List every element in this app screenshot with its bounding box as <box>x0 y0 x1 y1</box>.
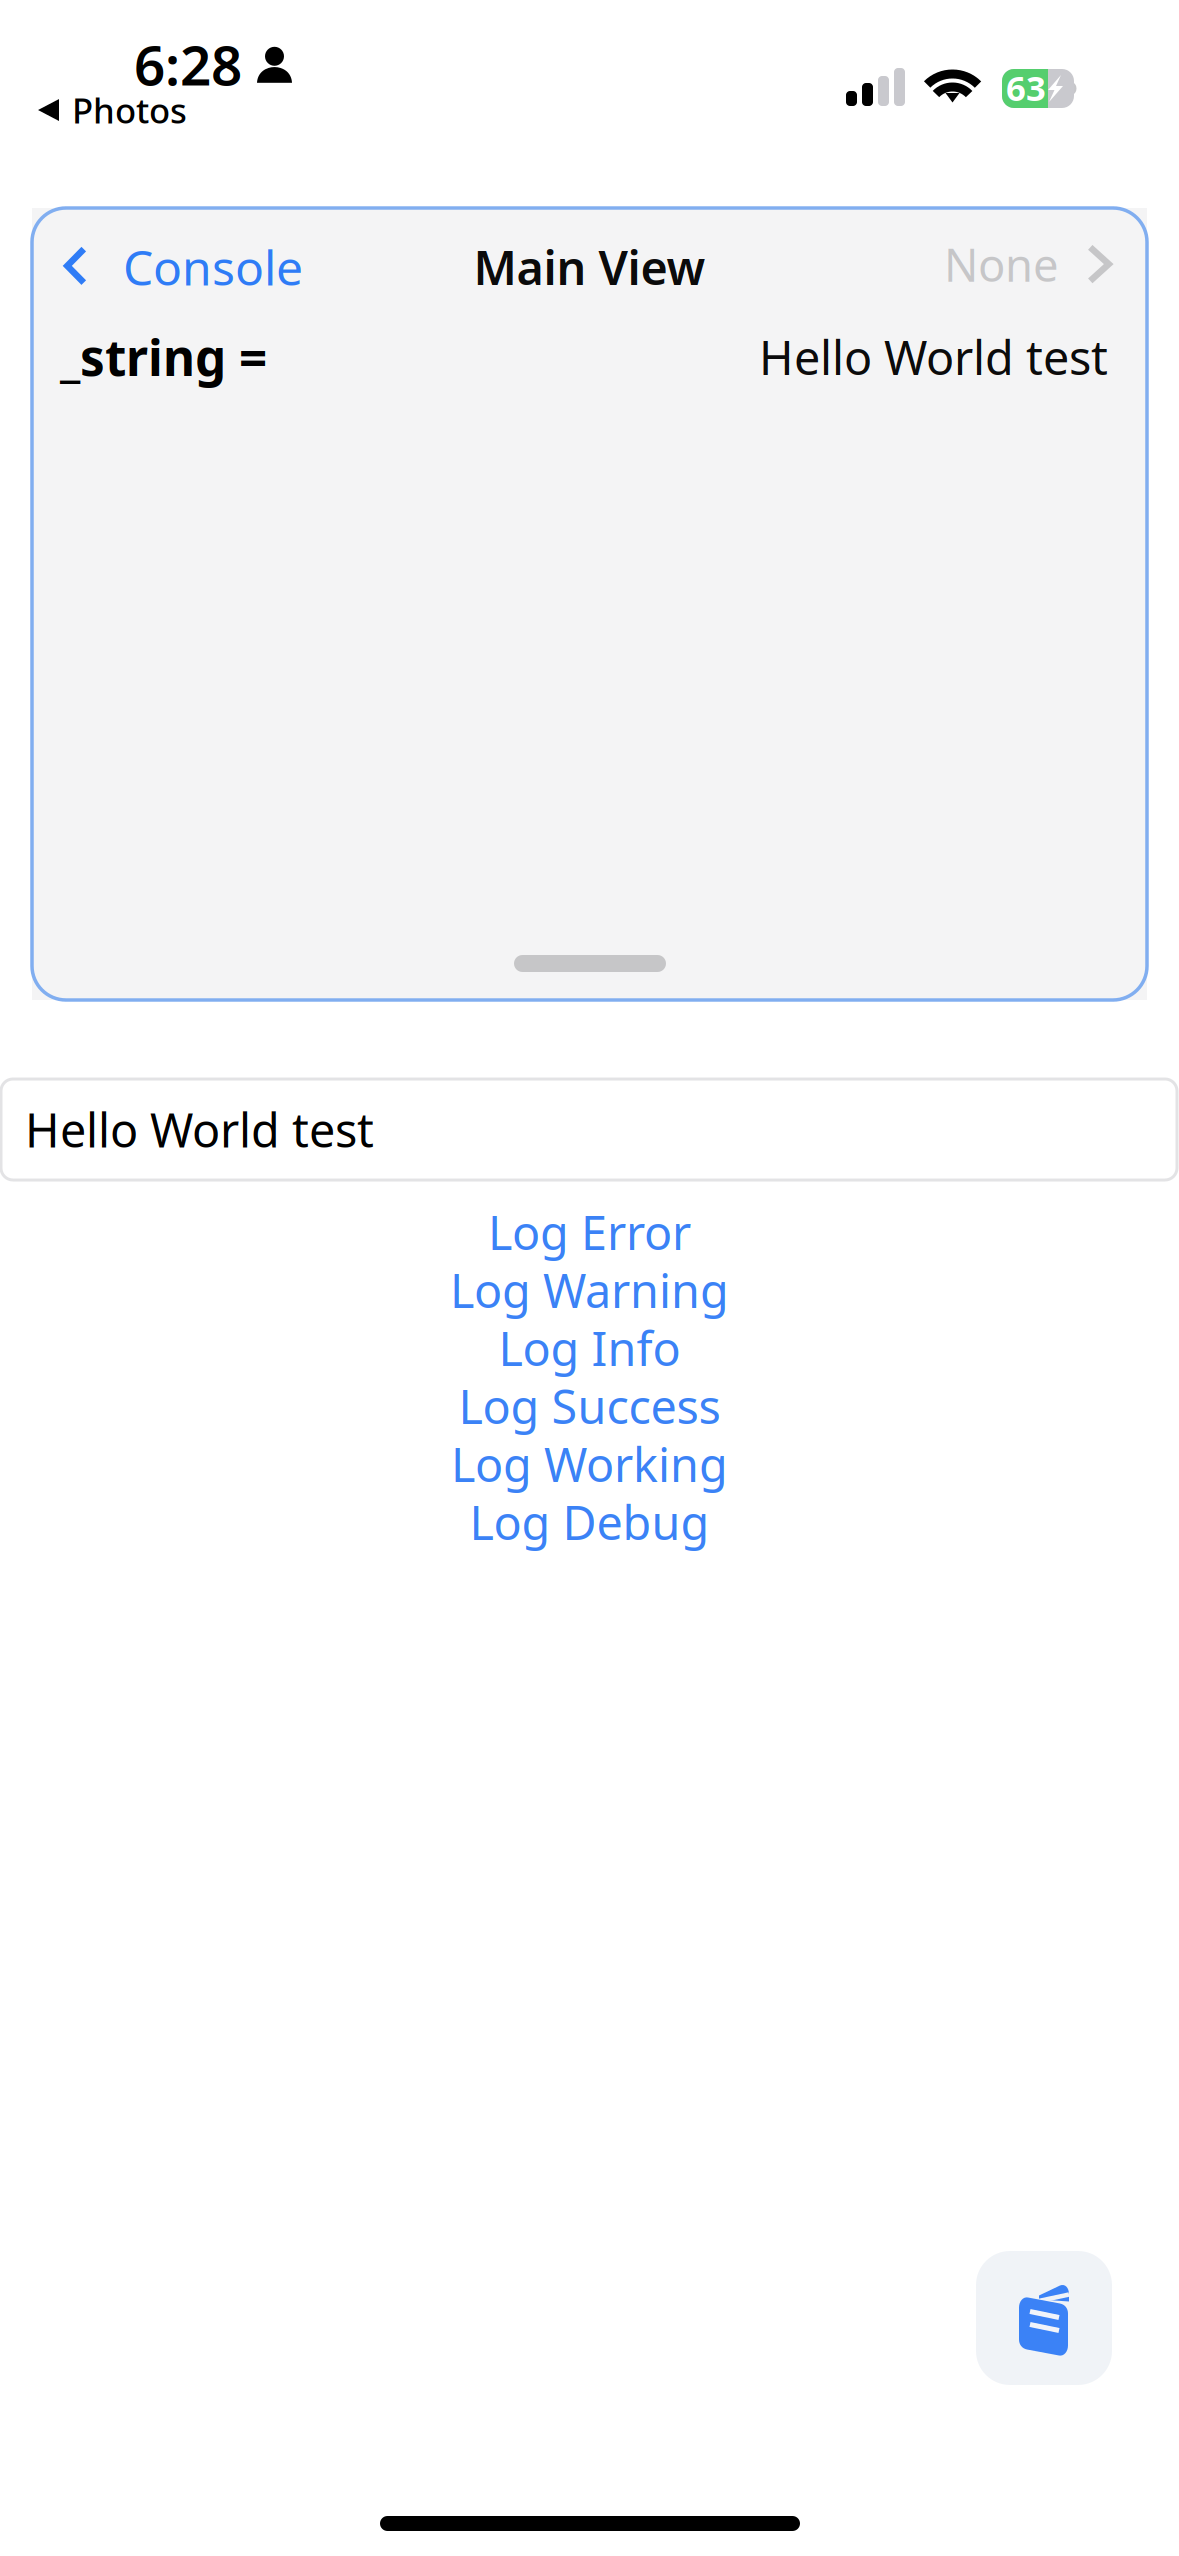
staticText: Log Error <box>488 1201 691 1263</box>
staticText: Log Working <box>451 1433 728 1495</box>
staticText: 63 <box>1006 64 1046 110</box>
button[interactable]: Console log <box>976 2251 1112 2385</box>
staticText: 6:28 <box>134 28 242 101</box>
staticText: Log Success <box>458 1375 720 1437</box>
staticText: Log Debug <box>469 1491 709 1553</box>
staticText: Hello World test <box>759 326 1108 388</box>
staticText: _string = <box>60 324 267 389</box>
button[interactable]: Log Warning <box>0 1261 1179 1319</box>
staticText: None <box>944 234 1059 294</box>
button[interactable]: Log Success <box>0 1377 1179 1435</box>
staticText: Hello World test <box>25 1098 374 1160</box>
staticText: Photos <box>72 87 187 133</box>
button[interactable]: None <box>944 246 1112 306</box>
staticText: Main View <box>473 236 705 298</box>
staticText: Console <box>123 235 303 299</box>
button[interactable]: Photos <box>38 87 187 133</box>
button[interactable]: Log Error <box>0 1203 1179 1261</box>
staticText: Log Info <box>498 1317 680 1379</box>
button[interactable]: Log Debug <box>0 1493 1179 1551</box>
button[interactable]: Console <box>64 246 303 310</box>
button[interactable]: Log Info <box>0 1319 1179 1377</box>
staticText: Log Warning <box>450 1259 729 1321</box>
button[interactable]: Log Working <box>0 1435 1179 1493</box>
